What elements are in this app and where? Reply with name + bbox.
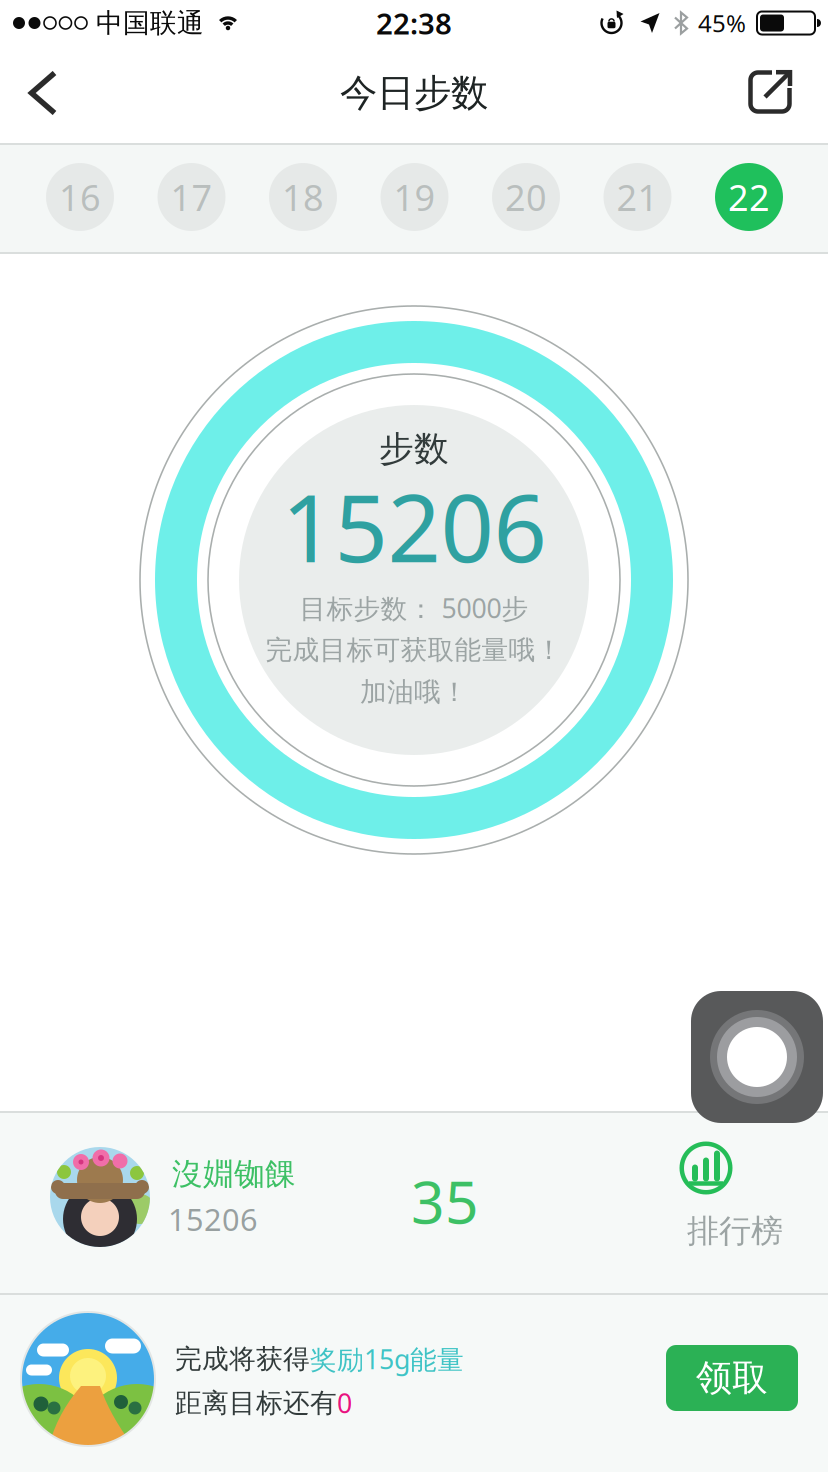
button[interactable]: AssistiveTouch bbox=[691, 991, 823, 1123]
staticText: 15206 bbox=[281, 464, 546, 588]
button[interactable]: Share bbox=[738, 60, 802, 124]
staticText: 45% bbox=[698, 7, 746, 39]
button[interactable]: Back bbox=[15, 58, 70, 128]
staticText: 18 bbox=[282, 173, 324, 221]
staticText: 0 bbox=[337, 1385, 352, 1421]
staticText: 距离目标还有 bbox=[175, 1387, 337, 1419]
staticText: 完成将获得 bbox=[175, 1343, 310, 1375]
button[interactable]: 20 bbox=[492, 163, 560, 231]
staticText: 加油哦！ bbox=[360, 676, 468, 708]
staticText: 35 bbox=[411, 1162, 479, 1240]
staticText: 目标步数： 5000步 bbox=[299, 590, 528, 626]
staticText: 沒婣铷餜 bbox=[172, 1155, 296, 1193]
staticText: 15206 bbox=[168, 1199, 258, 1239]
staticText: 步数 bbox=[379, 428, 449, 470]
button[interactable]: 16 bbox=[46, 163, 114, 231]
button[interactable]: 排行榜 bbox=[650, 1135, 780, 1263]
button[interactable]: 22 bbox=[715, 163, 783, 231]
button[interactable]: 领取 bbox=[666, 1345, 798, 1411]
staticText: 排行榜 bbox=[687, 1211, 783, 1251]
staticText: 奖励15g能量 bbox=[310, 1341, 464, 1377]
button[interactable]: 21 bbox=[603, 163, 671, 231]
staticText: 20 bbox=[505, 173, 547, 221]
staticText: 21 bbox=[616, 173, 658, 221]
staticText: 22 bbox=[728, 173, 770, 221]
staticText: 完成目标可获取能量哦！ bbox=[265, 634, 562, 666]
staticText: 领取 bbox=[696, 1356, 768, 1400]
staticText: 16 bbox=[59, 173, 101, 221]
button[interactable]: 17 bbox=[157, 163, 225, 231]
staticText: 17 bbox=[170, 173, 212, 221]
button[interactable]: 19 bbox=[380, 163, 448, 231]
staticText: 中国联通 bbox=[96, 7, 204, 39]
staticText: 今日步数 bbox=[340, 70, 488, 116]
staticText: 22:38 bbox=[376, 3, 452, 42]
staticText: 19 bbox=[393, 173, 435, 221]
button[interactable]: 18 bbox=[269, 163, 337, 231]
